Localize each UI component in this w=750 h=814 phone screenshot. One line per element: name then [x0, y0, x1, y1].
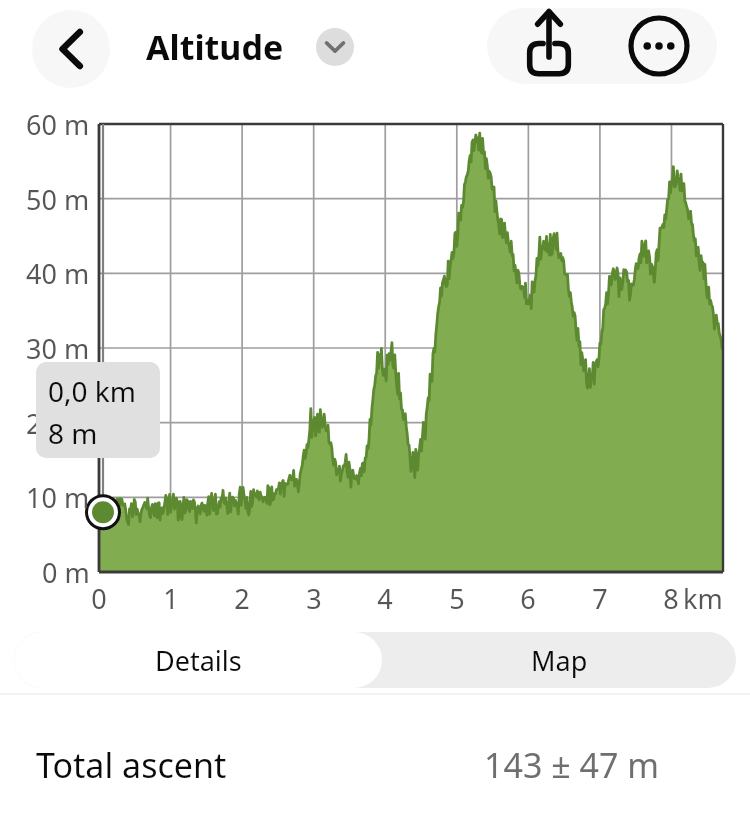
staticText: 4	[377, 580, 393, 617]
staticText: 0,0 km	[48, 372, 136, 410]
button[interactable]: Details	[14, 632, 382, 688]
staticText: Map	[531, 642, 588, 679]
button[interactable]: Altitude	[146, 24, 284, 70]
staticText: km	[683, 580, 723, 617]
button[interactable]: Back	[32, 10, 110, 88]
staticText: 0	[91, 580, 107, 617]
button[interactable]: Total ascent	[0, 694, 750, 814]
staticText: 8	[663, 580, 679, 617]
staticText: 20 m	[26, 405, 90, 442]
staticText: 0 m	[42, 554, 90, 591]
staticText: Details	[155, 642, 242, 679]
staticText: 10 m	[26, 479, 90, 516]
button[interactable]: More options	[605, 8, 713, 84]
button[interactable]: Map	[382, 632, 736, 688]
staticText: 6	[520, 580, 536, 617]
button[interactable]: Change metric	[316, 28, 354, 66]
staticText: 1	[163, 580, 179, 617]
staticText: 60 m	[26, 106, 90, 143]
staticText: 40 m	[26, 255, 90, 292]
button[interactable]: Share	[495, 8, 603, 84]
staticText: 3	[306, 580, 322, 617]
staticText: 2	[234, 580, 250, 617]
staticText: 50 m	[26, 181, 90, 218]
staticText: Total ascent	[36, 742, 227, 788]
staticText: 143 ± 47 m	[484, 742, 659, 788]
staticText: 5	[449, 580, 465, 617]
staticText: 8 m	[48, 414, 98, 452]
staticText: 7	[592, 580, 608, 617]
staticText: 30 m	[26, 330, 90, 367]
